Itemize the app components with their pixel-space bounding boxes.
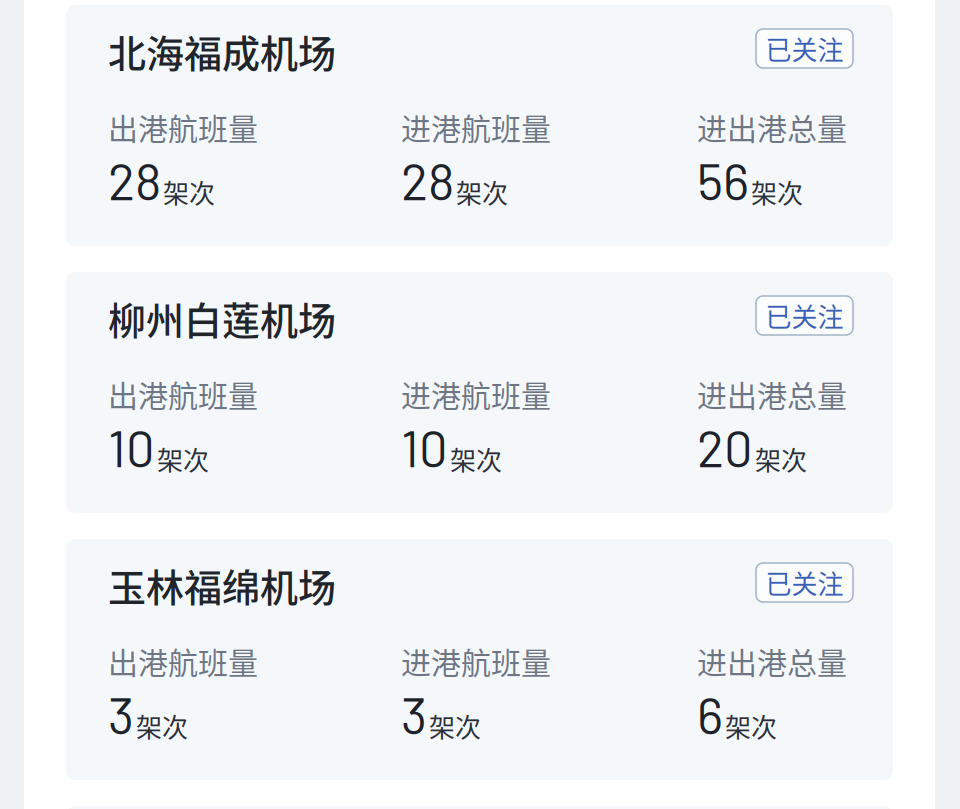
staticText: 3: [108, 684, 134, 744]
staticText: 架次: [755, 440, 807, 478]
staticText: 架次: [429, 707, 481, 745]
button[interactable]: 已关注: [756, 565, 853, 604]
staticText: 进港航班量: [401, 105, 551, 149]
staticText: 56: [697, 150, 749, 210]
staticText: 架次: [136, 707, 188, 745]
staticText: 进港航班量: [401, 372, 551, 416]
staticText: 柳州白莲机场: [108, 290, 336, 345]
staticText: 玉林福绵机场: [108, 557, 336, 612]
staticText: 20: [697, 417, 753, 477]
staticText: 3: [401, 684, 427, 744]
staticText: 北海福成机场: [108, 23, 336, 78]
staticText: 已关注: [765, 297, 843, 334]
staticText: 28: [108, 150, 161, 210]
staticText: 出港航班量: [108, 105, 258, 149]
staticText: 已关注: [765, 564, 843, 601]
button[interactable]: 已关注: [756, 31, 853, 70]
staticText: 6: [697, 684, 723, 744]
staticText: 28: [401, 150, 454, 210]
staticText: 10: [401, 417, 448, 477]
staticText: 已关注: [765, 30, 843, 67]
staticText: 进出港总量: [697, 105, 847, 149]
staticText: 进出港总量: [697, 639, 847, 683]
staticText: 出港航班量: [108, 639, 258, 683]
staticText: 架次: [751, 173, 803, 211]
staticText: 架次: [157, 440, 209, 478]
staticText: 架次: [450, 440, 502, 478]
staticText: 进港航班量: [401, 639, 551, 683]
button[interactable]: 已关注: [756, 298, 853, 337]
staticText: 架次: [456, 173, 508, 211]
staticText: 出港航班量: [108, 372, 258, 416]
staticText: 架次: [725, 707, 777, 745]
staticText: 10: [108, 417, 155, 477]
staticText: 架次: [163, 173, 215, 211]
staticText: 进出港总量: [697, 372, 847, 416]
